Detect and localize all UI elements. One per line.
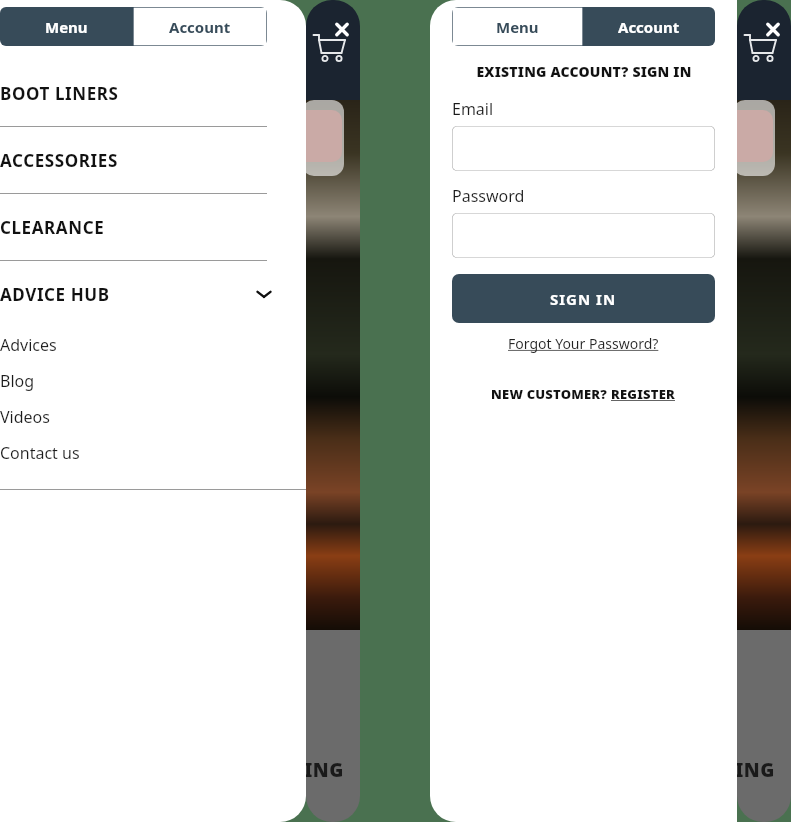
staticText: Menu: [496, 17, 539, 37]
button[interactable]: SIGN IN: [452, 274, 715, 323]
staticText: Account: [169, 17, 231, 37]
staticText: Videos: [0, 406, 50, 428]
staticText: ING: [306, 757, 344, 783]
button[interactable]: Forgot Your Password?: [508, 334, 659, 353]
staticText: Password: [452, 185, 525, 207]
staticText: Blog: [0, 370, 35, 392]
button[interactable]: ACCESSORIES: [0, 127, 285, 193]
button[interactable]: BOOT LINERS: [0, 60, 285, 126]
staticText: Advices: [0, 334, 57, 356]
button[interactable]: [452, 126, 715, 171]
other: Collapse Advice Hub: [251, 281, 277, 307]
staticText: ADVICE HUB: [0, 283, 110, 306]
button[interactable]: Menu: [452, 7, 583, 46]
button[interactable]: Account: [583, 7, 715, 46]
button[interactable]: REGISTER: [611, 385, 676, 403]
button[interactable]: [452, 213, 715, 258]
button[interactable]: CLEARANCE: [0, 194, 285, 260]
button[interactable]: Advices: [0, 327, 285, 363]
staticText: Account: [618, 17, 680, 37]
staticText: CLEARANCE: [0, 216, 105, 239]
staticText: REGISTER: [611, 385, 676, 403]
button[interactable]: ADVICE HUB: [0, 261, 285, 327]
button[interactable]: Menu: [0, 7, 133, 46]
button[interactable]: Videos: [0, 399, 285, 435]
staticText: BOOT LINERS: [0, 82, 119, 105]
staticText: SIGN IN: [550, 289, 617, 309]
staticText: Menu: [45, 17, 88, 37]
staticText: Forgot Your Password?: [508, 334, 659, 353]
button[interactable]: Cart: [312, 22, 356, 66]
button[interactable]: Contact us: [0, 435, 285, 471]
staticText: EXISTING ACCOUNT? SIGN IN: [476, 62, 692, 81]
staticText: NEW CUSTOMER?: [491, 385, 611, 403]
staticText: ING: [737, 757, 775, 783]
staticText: ACCESSORIES: [0, 149, 118, 172]
staticText: Contact us: [0, 442, 80, 464]
staticText: Email: [452, 98, 494, 120]
button[interactable]: Cart: [743, 22, 787, 66]
button[interactable]: Account: [133, 7, 267, 46]
button[interactable]: Blog: [0, 363, 285, 399]
